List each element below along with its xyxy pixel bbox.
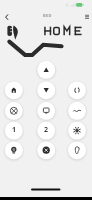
button[interactable]: Rotate	[68, 81, 86, 99]
button[interactable]: Source	[37, 102, 55, 120]
button[interactable]: Gesture	[68, 141, 86, 159]
staticText: 1	[12, 125, 17, 135]
button[interactable]: Volume down	[37, 81, 55, 99]
staticText: BED	[43, 13, 52, 18]
button[interactable]: Brightness	[68, 122, 86, 140]
button[interactable]: Volume up	[37, 61, 55, 79]
button[interactable]: Mute	[5, 102, 23, 120]
button[interactable]: Sound mode	[68, 102, 86, 120]
button[interactable]: Home	[5, 81, 23, 99]
button[interactable]: Menu	[80, 9, 92, 24]
staticText: 2	[44, 125, 49, 135]
button[interactable]: Back	[0, 10, 14, 25]
button[interactable]: Power	[37, 141, 55, 159]
button[interactable]: Light	[5, 141, 23, 159]
button[interactable]: Channel 2	[37, 122, 55, 140]
button[interactable]: Channel 1	[5, 122, 23, 140]
